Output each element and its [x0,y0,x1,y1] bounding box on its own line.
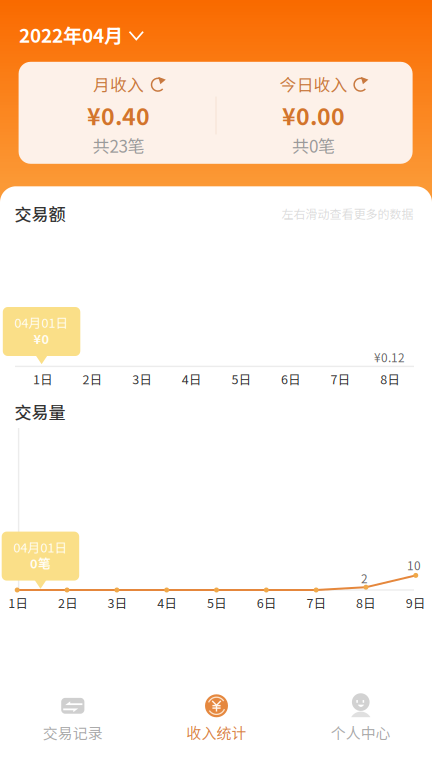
staticText: 共0笔 [292,133,335,158]
staticText: 今日收入 [279,72,347,96]
staticText: 10 [407,556,421,574]
staticText: 5日 [231,370,251,388]
staticText: 5日 [207,593,227,612]
staticText: 3日 [108,593,128,612]
staticText: 交易量 [14,399,65,424]
staticText: ¥0.12 [374,349,405,366]
button[interactable]: 月收入 [19,62,216,164]
staticText: 交易额 [14,201,65,226]
staticText: 2日 [58,593,78,612]
staticText: 左右滑动查看更多的数据 [281,205,413,222]
staticText: 04月01日 [15,313,69,331]
button[interactable]: 收入统计 [144,688,288,768]
staticText: ¥0 [34,329,50,348]
staticText: 0笔 [30,554,51,572]
staticText: ¥0.40 [87,98,150,132]
staticText: 1日 [8,593,28,612]
staticText: 9日 [406,593,426,612]
staticText: 7日 [331,370,351,388]
staticText: 1日 [33,370,53,388]
staticText: 2日 [83,370,103,388]
staticText: ¥0.00 [282,98,345,132]
staticText: 月收入 [93,72,144,96]
staticText: 4日 [182,370,202,388]
staticText: 收入统计 [186,722,246,743]
staticText: 6日 [257,593,277,612]
staticText: 04月01日 [13,537,67,556]
staticText: 2022年04月 [19,21,123,48]
staticText: 2 [361,569,368,587]
staticText: 交易记录 [43,722,103,743]
staticText: 7日 [306,593,326,612]
staticText: 8日 [380,370,400,388]
button[interactable]: 今日收入 [216,62,413,164]
staticText: 3日 [132,370,152,388]
button[interactable]: 个人中心 [289,688,432,768]
button[interactable]: 2022年04月 [19,19,149,51]
staticText: 8日 [356,593,376,612]
staticText: 4日 [157,593,177,612]
staticText: 共23笔 [92,133,144,158]
staticText: 6日 [281,370,301,388]
staticText: 个人中心 [331,722,391,743]
button[interactable]: 交易记录 [1,688,145,768]
